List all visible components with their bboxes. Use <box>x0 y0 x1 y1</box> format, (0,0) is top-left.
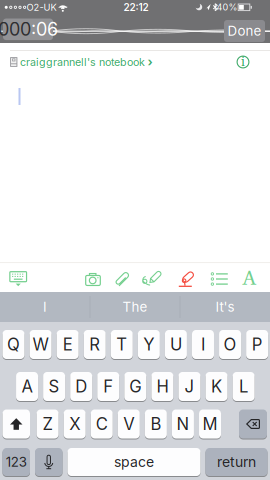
staticText: O <box>224 334 237 355</box>
button[interactable]: Lists <box>207 268 231 290</box>
staticText: M <box>202 414 217 434</box>
staticText: Q <box>7 334 20 355</box>
button[interactable]: Formatting <box>238 268 260 290</box>
button[interactable]: 123 <box>2 448 30 476</box>
button[interactable]: V <box>118 409 140 438</box>
button[interactable]: B <box>145 409 167 438</box>
staticText: Y <box>143 334 154 355</box>
staticText: Z <box>43 414 53 434</box>
staticText: S <box>49 376 60 397</box>
button[interactable]: M <box>199 409 221 438</box>
staticText: craiggrannell's notebook <box>20 55 145 68</box>
staticText: The <box>122 299 147 315</box>
staticText: K <box>211 376 222 397</box>
staticText: H <box>156 376 168 397</box>
staticText: 000 <box>0 18 31 40</box>
button[interactable]: H <box>151 372 173 401</box>
staticText: G <box>129 376 141 397</box>
button[interactable]: A <box>16 372 38 401</box>
staticText: L <box>239 376 248 397</box>
staticText: 123 <box>6 454 27 470</box>
button[interactable]: J <box>178 372 200 401</box>
staticText: N <box>176 414 189 434</box>
button[interactable]: N <box>172 409 194 438</box>
staticText: X <box>69 414 80 434</box>
button[interactable]: L <box>233 372 255 401</box>
button[interactable]: S <box>43 372 65 401</box>
button[interactable]: The <box>91 292 179 322</box>
staticText: I <box>201 334 205 355</box>
staticText: T <box>116 334 127 355</box>
button[interactable]: W <box>30 330 52 359</box>
button[interactable]: I <box>192 330 214 359</box>
staticText: › <box>147 55 152 69</box>
staticText: 40% <box>216 2 237 13</box>
button[interactable]: Handwriting <box>140 266 166 290</box>
staticText: :06 <box>31 18 58 40</box>
staticText: It's <box>215 299 234 315</box>
staticText: W <box>33 334 49 355</box>
button[interactable]: I <box>1 292 89 322</box>
button[interactable]: Y <box>138 330 160 359</box>
button[interactable]: T <box>111 330 133 359</box>
button[interactable]: C <box>91 409 113 438</box>
button[interactable]: Camera <box>81 268 105 290</box>
button[interactable]: It's <box>181 292 269 322</box>
staticText: J <box>184 376 194 397</box>
button[interactable]: Dictate <box>35 448 62 476</box>
staticText: U <box>170 334 182 355</box>
button[interactable]: craiggrannell's notebook <box>10 55 210 69</box>
button[interactable]: X <box>64 409 86 438</box>
button[interactable]: Q <box>2 330 24 359</box>
staticText: 22:12 <box>123 1 148 13</box>
staticText: B <box>150 414 161 434</box>
staticText: R <box>89 334 100 355</box>
staticText: P <box>252 334 263 355</box>
button[interactable]: R <box>84 330 106 359</box>
button[interactable]: D <box>70 372 92 401</box>
button[interactable]: Stop recording <box>173 266 197 290</box>
staticText: A <box>242 266 255 292</box>
button[interactable]: Shift <box>2 409 30 438</box>
staticText: E <box>63 334 73 355</box>
staticText: space <box>114 453 154 470</box>
button[interactable]: P <box>246 330 268 359</box>
staticText: return <box>217 453 256 470</box>
button[interactable]: K <box>205 372 227 401</box>
staticText: V <box>123 414 134 434</box>
button[interactable]: Attachment <box>110 267 134 291</box>
button[interactable]: Z <box>37 409 59 438</box>
staticText: A <box>22 376 33 397</box>
staticText: D <box>75 376 87 397</box>
button[interactable]: return <box>205 448 267 476</box>
button[interactable]: F <box>97 372 119 401</box>
button[interactable]: Delete <box>239 409 267 438</box>
button[interactable]: E <box>57 330 79 359</box>
button[interactable]: Done <box>224 20 265 42</box>
button[interactable]: U <box>165 330 187 359</box>
staticText: Done <box>227 23 261 39</box>
staticText: O2-UK <box>26 2 56 13</box>
staticText: F <box>103 376 113 397</box>
button[interactable]: G <box>124 372 146 401</box>
button[interactable]: Dismiss keyboard <box>5 267 31 291</box>
staticText: i <box>241 53 245 70</box>
button[interactable]: O <box>219 330 241 359</box>
staticText: C <box>96 414 108 434</box>
button[interactable]: space <box>67 448 200 476</box>
button[interactable]: Note information <box>236 55 249 68</box>
staticText: I <box>43 299 47 315</box>
